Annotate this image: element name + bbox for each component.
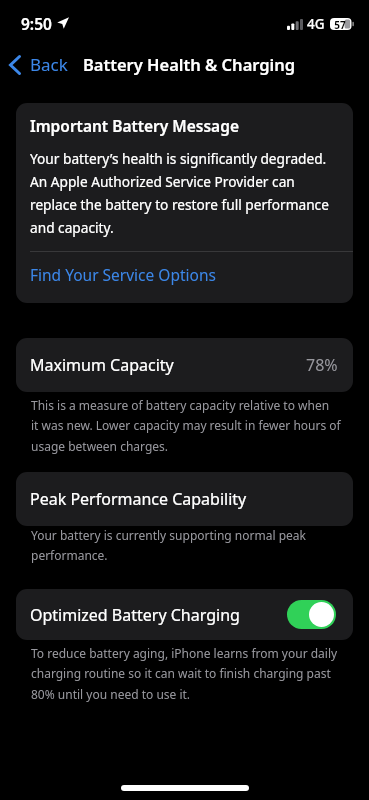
button[interactable]: Optimized Battery Charging toggle — [287, 600, 336, 629]
staticText: Maximum Capacity — [30, 354, 174, 376]
staticText: 9:50 — [21, 13, 52, 34]
staticText: Your battery is currently supporting nor… — [31, 527, 351, 564]
staticText: Peak Performance Capability — [30, 488, 247, 510]
button[interactable]: Peak Performance Capability — [16, 472, 353, 526]
button[interactable]: Find Your Service Options — [16, 252, 353, 303]
staticText: Find Your Service Options — [30, 264, 216, 285]
staticText: Important Battery Message — [30, 115, 239, 136]
staticText: This is a measure of battery capacity re… — [31, 397, 341, 455]
staticText: Optimized Battery Charging — [30, 604, 240, 626]
staticText: Back — [30, 53, 68, 76]
button[interactable]: Back — [0, 47, 76, 82]
button[interactable]: Maximum Capacity — [16, 338, 353, 392]
staticText: 78% — [306, 354, 338, 376]
staticText: Battery Health & Charging — [83, 53, 296, 75]
staticText: Your battery’s health is significantly d… — [30, 149, 338, 237]
staticText: 4G — [307, 15, 325, 33]
staticText: 57 — [334, 18, 346, 30]
staticText: To reduce battery aging, iPhone learns f… — [31, 645, 351, 703]
